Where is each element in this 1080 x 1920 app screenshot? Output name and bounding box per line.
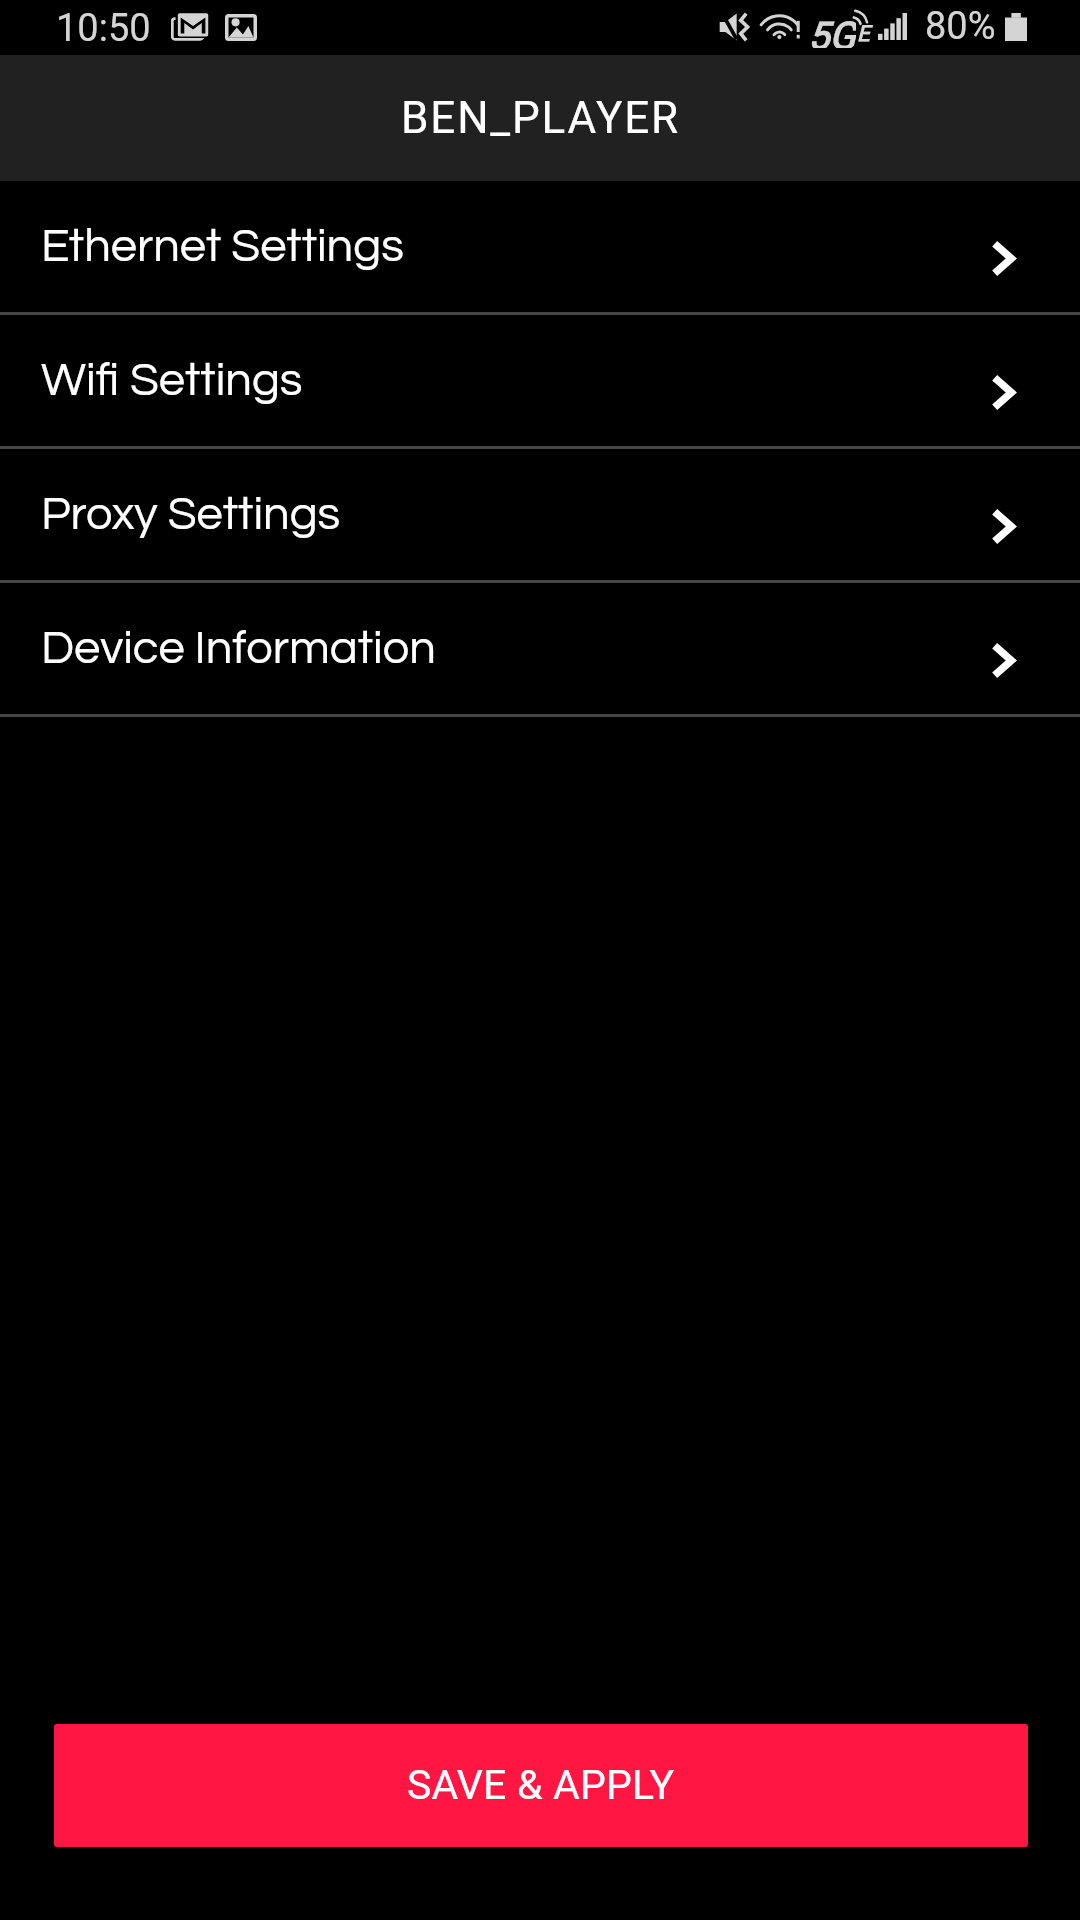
staticText: Ethernet Settings: [41, 222, 404, 270]
button[interactable]: Wifi Settings: [0, 315, 1080, 446]
button[interactable]: Proxy Settings: [0, 449, 1080, 580]
other: Open Wifi Settings: [990, 374, 1016, 411]
staticText: E: [857, 21, 870, 47]
staticText: 80%: [925, 4, 996, 49]
staticText: Proxy Settings: [41, 490, 341, 538]
staticText: Device Information: [41, 624, 436, 672]
button[interactable]: Device Information: [0, 583, 1080, 714]
button[interactable]: Ethernet Settings: [0, 181, 1080, 312]
button[interactable]: SAVE & APPLY: [54, 1724, 1028, 1847]
staticText: SAVE & APPLY: [407, 1761, 675, 1809]
staticText: Wifi Settings: [41, 356, 303, 404]
staticText: 10:50: [56, 6, 151, 51]
staticText: BEN_PLAYER: [401, 92, 680, 144]
other: Open Ethernet Settings: [990, 240, 1016, 277]
staticText: 5G: [808, 14, 856, 48]
other: Open Proxy Settings: [990, 508, 1016, 545]
other: Open Device Information: [990, 642, 1016, 679]
